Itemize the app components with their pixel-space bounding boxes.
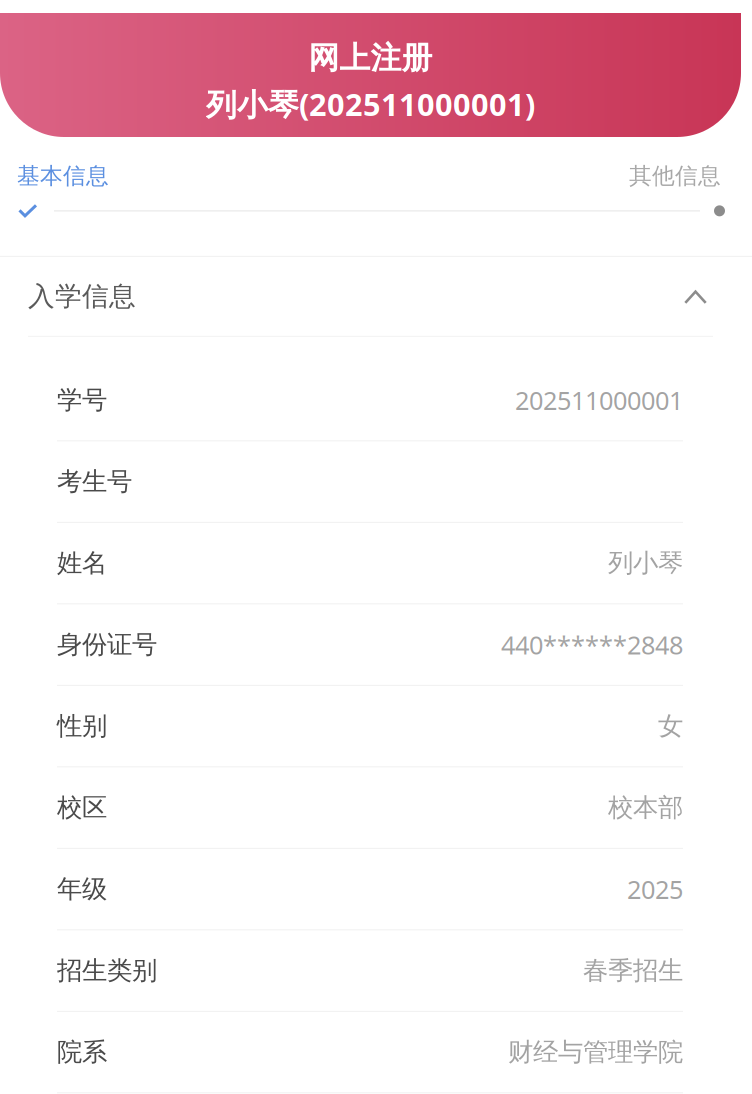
- button[interactable]: 姓名: [0, 523, 752, 604]
- staticText: 校区: [57, 792, 107, 823]
- staticText: 财经与管理学院: [508, 1036, 683, 1068]
- staticText: 院系: [57, 1036, 107, 1068]
- button[interactable]: 其他信息: [629, 162, 721, 190]
- staticText: 考生号: [57, 466, 132, 497]
- button[interactable]: 年级: [0, 849, 752, 930]
- staticText: 2025: [627, 872, 683, 906]
- button[interactable]: 身份证号: [0, 604, 752, 686]
- button[interactable]: 招生类别: [0, 930, 752, 1012]
- staticText: 校本部: [608, 792, 683, 823]
- staticText: 招生类别: [57, 955, 157, 986]
- staticText: 列小琴(202511000001): [206, 84, 535, 124]
- staticText: 姓名: [57, 547, 107, 579]
- button[interactable]: 院系: [0, 1012, 752, 1093]
- button[interactable]: 考生号: [0, 441, 752, 523]
- staticText: 春季招生: [583, 955, 683, 986]
- staticText: 其他信息: [629, 162, 721, 190]
- staticText: 女: [658, 710, 683, 742]
- staticText: 入学信息: [28, 280, 136, 313]
- button[interactable]: Collapse 入学信息: [684, 288, 707, 304]
- button[interactable]: 性别: [0, 686, 752, 767]
- staticText: 学号: [57, 384, 107, 416]
- staticText: 440******2848: [501, 628, 683, 661]
- staticText: 列小琴: [608, 547, 683, 579]
- staticText: 性别: [57, 710, 107, 742]
- staticText: 身份证号: [57, 629, 157, 660]
- button[interactable]: 学号: [0, 360, 752, 441]
- button[interactable]: 基本信息: [17, 162, 109, 190]
- staticText: 年级: [57, 873, 107, 905]
- staticText: 202511000001: [515, 383, 683, 417]
- button[interactable]: 校区: [0, 767, 752, 849]
- staticText: 网上注册: [308, 39, 432, 77]
- staticText: 基本信息: [17, 162, 109, 190]
